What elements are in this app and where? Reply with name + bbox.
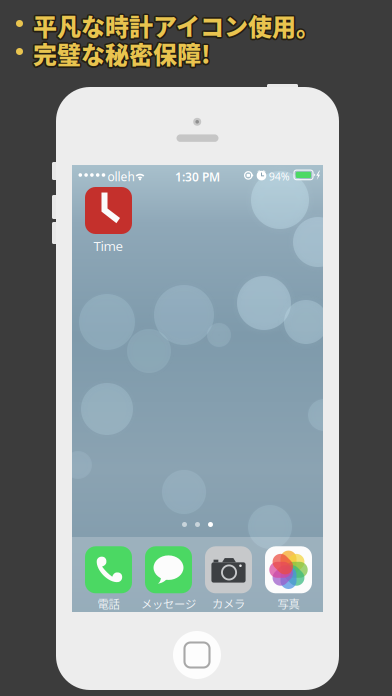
staticText: olleh bbox=[107, 169, 134, 184]
staticText: 完璧な秘密保障! bbox=[33, 38, 211, 72]
button[interactable]: Home bbox=[173, 631, 221, 679]
button[interactable]: Time bbox=[78, 187, 138, 255]
staticText: 94% bbox=[269, 169, 290, 183]
staticText: 完璧な秘密保障! bbox=[35, 36, 213, 71]
staticText: 平凡な時計アイコン使用。 bbox=[34, 9, 321, 44]
staticText: 完璧な秘密保障! bbox=[34, 35, 212, 70]
staticText: 完璧な秘密保障! bbox=[34, 37, 212, 72]
staticText: 平凡な時計アイコン使用。 bbox=[33, 6, 320, 41]
staticText: 平凡な時計アイコン使用。 bbox=[32, 9, 319, 44]
staticText: 完璧な秘密保障! bbox=[31, 36, 209, 71]
staticText: 完璧な秘密保障! bbox=[33, 34, 211, 69]
staticText: 完璧な秘密保障! bbox=[33, 36, 211, 71]
staticText: 1:30 PM bbox=[175, 169, 220, 185]
staticText: 平凡な時計アイコン使用。 bbox=[31, 8, 318, 43]
staticText: 完璧な秘密保障! bbox=[32, 35, 210, 70]
staticText: 平凡な時計アイコン使用。 bbox=[33, 10, 320, 44]
staticText: 平凡な時計アイコン使用。 bbox=[33, 8, 320, 43]
staticText: メッセージ bbox=[141, 595, 196, 612]
button[interactable]: 電話 bbox=[78, 546, 138, 612]
button[interactable]: メッセージ bbox=[138, 546, 198, 612]
staticText: 平凡な時計アイコン使用。 bbox=[32, 7, 319, 42]
staticText: Time bbox=[93, 237, 123, 255]
button[interactable]: 写真 bbox=[258, 546, 318, 612]
staticText: 電話 bbox=[97, 595, 119, 612]
staticText: 完璧な秘密保障! bbox=[32, 37, 210, 72]
staticText: 平凡な時計アイコン使用。 bbox=[35, 8, 322, 43]
staticText: カメラ bbox=[212, 595, 245, 612]
staticText: 写真 bbox=[277, 595, 299, 612]
button[interactable]: カメラ bbox=[198, 546, 258, 612]
staticText: 平凡な時計アイコン使用。 bbox=[34, 7, 321, 42]
